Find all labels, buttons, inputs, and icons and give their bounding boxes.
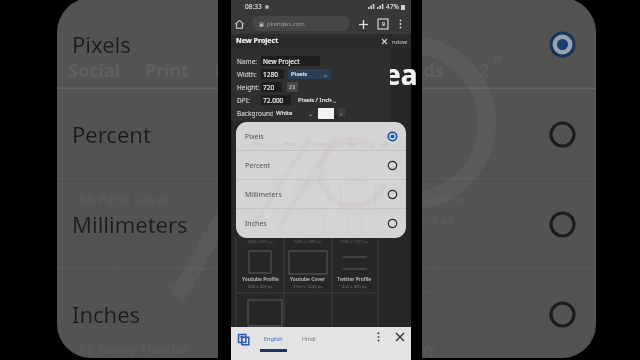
staticText: 1080 x 1080 px	[293, 239, 322, 244]
staticText: 720	[263, 83, 275, 92]
button[interactable]: Close	[379, 36, 389, 46]
button[interactable]: 720	[261, 82, 282, 92]
button[interactable]: Pixels	[57, 0, 596, 89]
button[interactable]: Pixels	[236, 122, 406, 151]
staticText: Hindi	[302, 335, 316, 342]
button[interactable]: Percent	[236, 151, 406, 180]
button[interactable]: New Project	[261, 56, 320, 66]
button[interactable]: New tab	[356, 17, 370, 31]
staticText: 400 x 400 px	[342, 284, 367, 290]
staticText: Percent	[72, 119, 151, 149]
staticText: White	[276, 109, 293, 117]
staticText: 1080 px	[413, 212, 455, 227]
staticText: 08:33	[245, 2, 262, 11]
staticText: 72.000	[263, 96, 284, 105]
staticText: Ph	[215, 58, 238, 83]
button[interactable]: More options	[393, 17, 407, 31]
staticText: 1080 x 1920 px	[340, 239, 369, 244]
staticText: Height:	[237, 83, 260, 92]
staticText: 47%	[386, 2, 399, 11]
staticText: 1080 x 850 px	[247, 239, 273, 244]
staticText: st Image	[409, 190, 467, 208]
staticText: Name:	[237, 57, 258, 66]
staticText: tory	[409, 340, 437, 358]
button[interactable]: Tabs	[376, 17, 390, 31]
staticText: Screen	[314, 141, 329, 147]
button[interactable]: Translate	[234, 330, 252, 348]
staticText: Pixels	[291, 70, 308, 78]
staticText: 2	[479, 58, 490, 83]
staticText: ndow	[392, 38, 408, 46]
staticText: ⌄	[332, 97, 338, 104]
staticText: 800 x 800 px	[248, 284, 273, 290]
staticText: Inches	[72, 299, 141, 329]
staticText: 2↕	[289, 84, 297, 91]
button[interactable]: Twitter Profile	[331, 248, 378, 293]
staticText: ⌄	[323, 71, 329, 78]
button[interactable]: Youtube Cover	[284, 248, 331, 293]
button[interactable]: Home	[232, 17, 246, 31]
staticText: FB Group Header	[79, 340, 189, 358]
staticText: Percent	[245, 161, 271, 171]
staticText: Youtube Cover	[290, 276, 325, 283]
button[interactable]: Inches	[236, 209, 406, 238]
staticText: Ads	[381, 141, 389, 147]
staticText: pkehqws.com	[267, 20, 305, 28]
staticText: ea	[384, 55, 418, 93]
staticText: Youtube Profile	[242, 276, 279, 283]
staticText: New Project	[263, 57, 300, 66]
staticText: Millimeters	[72, 209, 188, 239]
staticText: Background:	[237, 109, 276, 118]
staticText: Pixels / Inch	[298, 96, 332, 104]
staticText: Photo	[283, 141, 296, 147]
button[interactable]: 72.000	[261, 95, 291, 105]
button[interactable]: Millimeters	[236, 180, 406, 209]
staticText: 1280	[263, 70, 278, 79]
button[interactable]: pkehqws.com	[252, 16, 350, 31]
staticText: ⌄	[308, 110, 314, 117]
staticText: N	[493, 50, 502, 65]
staticText: Print	[252, 141, 263, 147]
staticText: Twitter Profile	[337, 276, 372, 283]
button[interactable]: Pixels / Inch	[295, 95, 340, 105]
button[interactable]: White	[273, 108, 316, 118]
staticText: FB Page Cover	[295, 178, 322, 183]
staticText: Width:	[237, 70, 257, 79]
staticText: ⌄	[339, 110, 344, 116]
staticText: Ads	[411, 58, 444, 83]
button[interactable]: More options	[370, 329, 386, 345]
button[interactable]: Inches	[57, 269, 596, 358]
button[interactable]: English	[255, 327, 291, 360]
staticText: Print	[145, 58, 190, 83]
staticText: 2560 x 1440 px	[293, 284, 323, 290]
button[interactable]: Close	[392, 329, 408, 345]
staticText: Millimeters	[245, 190, 282, 200]
staticText: Pixels	[72, 29, 131, 59]
staticText: English	[264, 335, 283, 342]
button[interactable]: Millimeters	[57, 179, 596, 269]
button[interactable]: Youtube Profile	[236, 248, 284, 293]
button[interactable]: Pixels	[288, 69, 331, 79]
staticText: DPI:	[237, 96, 250, 105]
button[interactable]: Percent	[57, 89, 596, 179]
staticText: 9	[382, 21, 385, 28]
staticText: Inches	[245, 219, 267, 229]
staticText: Pixels	[245, 132, 264, 142]
button[interactable]: Hindi	[293, 327, 325, 360]
staticText: FB Post Image	[342, 178, 370, 183]
button[interactable]: 1280	[261, 69, 284, 79]
staticText: Social	[68, 58, 120, 83]
staticText: Web	[348, 141, 358, 147]
staticText: New Project	[236, 36, 279, 46]
